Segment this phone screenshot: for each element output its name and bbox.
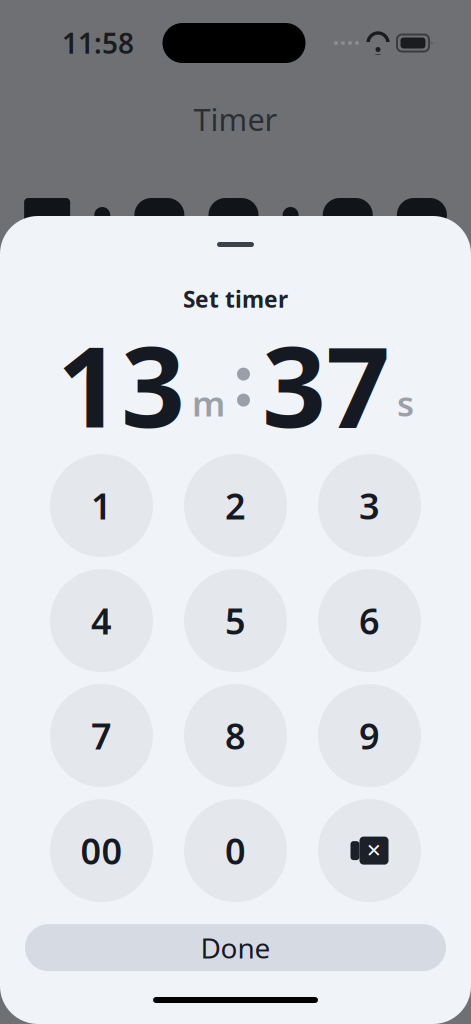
button[interactable]: 7 [50,684,153,787]
staticText: s [397,380,414,426]
button[interactable]: 8 [184,684,287,787]
button[interactable]: Delete [318,799,421,902]
staticText: 11:58 [62,24,134,62]
button[interactable]: 0 [184,799,287,902]
button[interactable]: 3 [318,454,421,557]
staticText: 37 [262,310,390,458]
staticText: 7 [91,712,112,759]
staticText: 0 [225,827,246,874]
staticText: Done [200,929,270,966]
staticText: Set timer [183,284,288,314]
button[interactable]: 00 [50,799,153,902]
button[interactable]: 6 [318,569,421,672]
staticText: 2 [225,482,246,529]
staticText: Timer [193,99,277,139]
staticText: 00 [80,827,122,874]
staticText: 3 [359,482,380,529]
staticText: 9 [359,712,380,759]
staticText: 6 [359,597,380,644]
staticText: m [192,380,225,426]
staticText: 5 [225,597,246,644]
button[interactable]: 2 [184,454,287,557]
button[interactable]: 4 [50,569,153,672]
staticText: ✕ [366,840,382,861]
staticText: 13 [57,310,185,458]
staticText: 4 [91,597,112,644]
staticText: 8 [225,712,246,759]
button[interactable]: Done [25,924,446,971]
staticText: 1 [91,482,112,529]
button[interactable]: 1 [50,454,153,557]
button[interactable]: 9 [318,684,421,787]
button[interactable]: 5 [184,569,287,672]
